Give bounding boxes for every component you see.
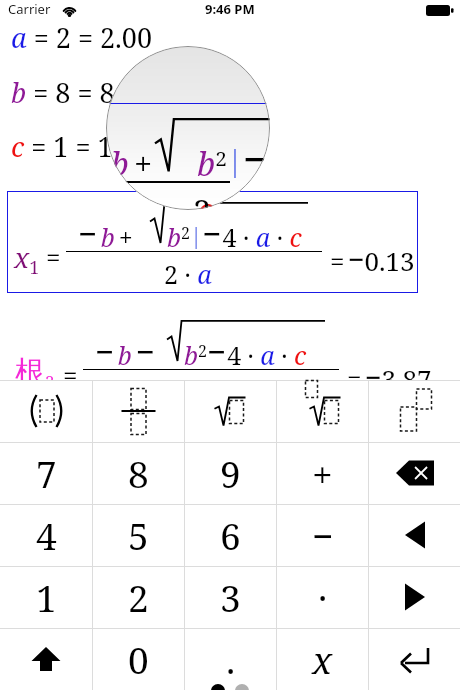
button[interactable]: 6 (185, 504, 276, 566)
button[interactable]: Square root (185, 380, 276, 442)
button[interactable]: . (185, 628, 276, 690)
button[interactable]: 3 (185, 566, 276, 628)
other: Shift (26, 639, 66, 679)
staticText: 9 (220, 448, 241, 498)
staticText: a = 2 = 2.00 (11, 19, 153, 56)
staticText: = (46, 239, 61, 274)
staticText: 0 (128, 634, 149, 684)
staticText: x (312, 634, 333, 684)
staticText: 6 (220, 510, 241, 560)
button[interactable]: Power (369, 380, 460, 442)
staticText: − (312, 510, 334, 560)
other: Enter (395, 639, 435, 679)
other: Delete (385, 453, 445, 493)
staticText: − b − (95, 329, 155, 374)
staticText: 3 (220, 572, 241, 622)
button[interactable]: 1 (0, 566, 92, 628)
button[interactable]: 4 (0, 504, 92, 566)
other: Move left (395, 515, 435, 555)
staticText: − b + (106, 129, 153, 187)
staticText: 2 (128, 572, 149, 622)
button[interactable]: Parentheses (0, 380, 92, 442)
other: Nth root (277, 380, 368, 442)
button[interactable]: 5 (93, 504, 184, 566)
staticText: b2|− 4 · a · c (167, 211, 302, 256)
staticText: + (312, 448, 333, 498)
button[interactable]: Enter (369, 628, 460, 690)
staticText: 8 (128, 448, 149, 498)
staticText: 2 · a (193, 189, 256, 210)
button[interactable]: Move right (369, 566, 460, 628)
staticText: 2 · a (181, 375, 229, 409)
staticText: = −0.13 (330, 239, 415, 278)
staticText: b2− 4 · a · c (184, 329, 307, 374)
button[interactable]: 2 (93, 566, 184, 628)
button[interactable]: Delete (369, 442, 460, 504)
staticText: = −3.87 (347, 357, 432, 396)
staticText: x1 (14, 238, 40, 279)
staticText: b2|− 4 · a · c (197, 129, 270, 210)
button[interactable]: 8 (93, 442, 184, 504)
button[interactable]: · (277, 566, 368, 628)
other: Square root (185, 380, 276, 442)
staticText: 7 (36, 448, 57, 498)
staticText: 4 (36, 510, 57, 560)
staticText: 5 (128, 510, 149, 560)
staticText: − b + (78, 211, 133, 256)
button[interactable]: + (277, 442, 368, 504)
button[interactable]: − (277, 504, 368, 566)
button[interactable]: Shift (0, 628, 92, 690)
staticText: . (226, 634, 236, 684)
button[interactable]: Nth root (277, 380, 368, 442)
button[interactable]: 0 (93, 628, 184, 690)
other: Parentheses (0, 380, 92, 442)
other: Power (369, 380, 460, 442)
staticText: 9:46 PM (205, 0, 255, 18)
other: Battery full (426, 5, 453, 16)
button[interactable]: Fraction (93, 380, 184, 442)
staticText: b = 8 = 8 (11, 74, 115, 111)
other: Fraction (93, 380, 184, 442)
button[interactable]: 7 (0, 442, 92, 504)
other: Move right (395, 577, 435, 617)
staticText: Carrier (8, 0, 51, 18)
staticText: 根2 (15, 353, 55, 393)
staticText: 1 (36, 572, 57, 622)
staticText: 2 · a (164, 257, 212, 291)
other: Wi-Fi signal (62, 4, 77, 19)
button[interactable]: Move left (369, 504, 460, 566)
staticText: = (63, 357, 78, 392)
button[interactable]: 9 (185, 442, 276, 504)
staticText: · (318, 572, 328, 622)
button[interactable]: x (277, 628, 368, 690)
staticText: c = 1 = 1 (11, 128, 113, 165)
